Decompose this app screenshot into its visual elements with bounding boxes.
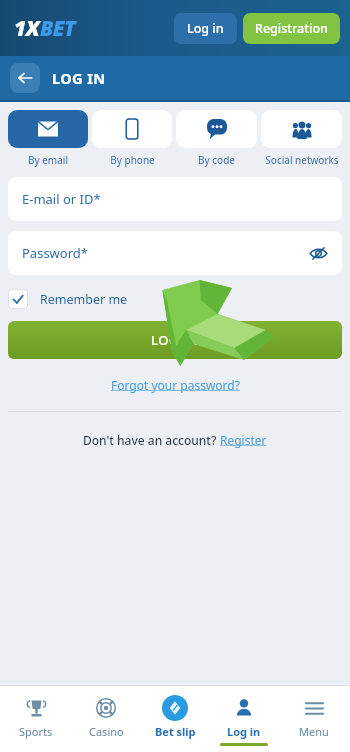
button[interactable]: Casino [73,686,139,743]
staticText: E-mail or ID* [22,190,101,208]
staticText: Social networks [265,153,339,167]
button[interactable]: Menu [281,686,347,743]
button[interactable]: By phone [92,110,172,167]
button[interactable]: LOG IN [8,321,342,359]
button[interactable]: Log in [211,686,277,746]
staticText: By code [198,153,235,167]
button[interactable]: Password* [8,231,342,275]
button[interactable]: Bet slip [142,686,208,743]
button[interactable]: Back [10,63,40,93]
button[interactable]: Sports [3,686,69,743]
staticText: Remember me [40,291,128,308]
staticText: Log in [227,724,261,739]
staticText: BET [40,14,76,43]
staticText: LOG IN [52,68,106,88]
staticText: By email [28,153,68,167]
staticText: LOG IN [151,331,199,349]
button[interactable]: E-mail or ID* [8,177,342,221]
staticText: Log in [187,20,224,37]
button[interactable]: Registration [243,13,340,44]
button[interactable]: Social networks [261,110,342,167]
staticText: By phone [110,153,155,167]
button[interactable]: Remember me [8,289,342,309]
staticText: Menu [299,724,329,739]
staticText: 1X [14,14,40,43]
button[interactable]: Register [220,432,267,448]
button[interactable]: Log in [174,13,237,44]
staticText: Password* [22,244,88,262]
button[interactable]: Forgot your password? [107,373,244,397]
button[interactable]: By code [176,110,257,167]
staticText: Casino [89,724,124,739]
staticText: Sports [19,724,53,739]
button[interactable]: Show password [306,241,330,265]
button[interactable]: By email [8,110,88,167]
staticText: Registration [255,20,328,37]
staticText: Bet slip [155,724,196,739]
staticText: Don't have an account? [83,432,220,448]
